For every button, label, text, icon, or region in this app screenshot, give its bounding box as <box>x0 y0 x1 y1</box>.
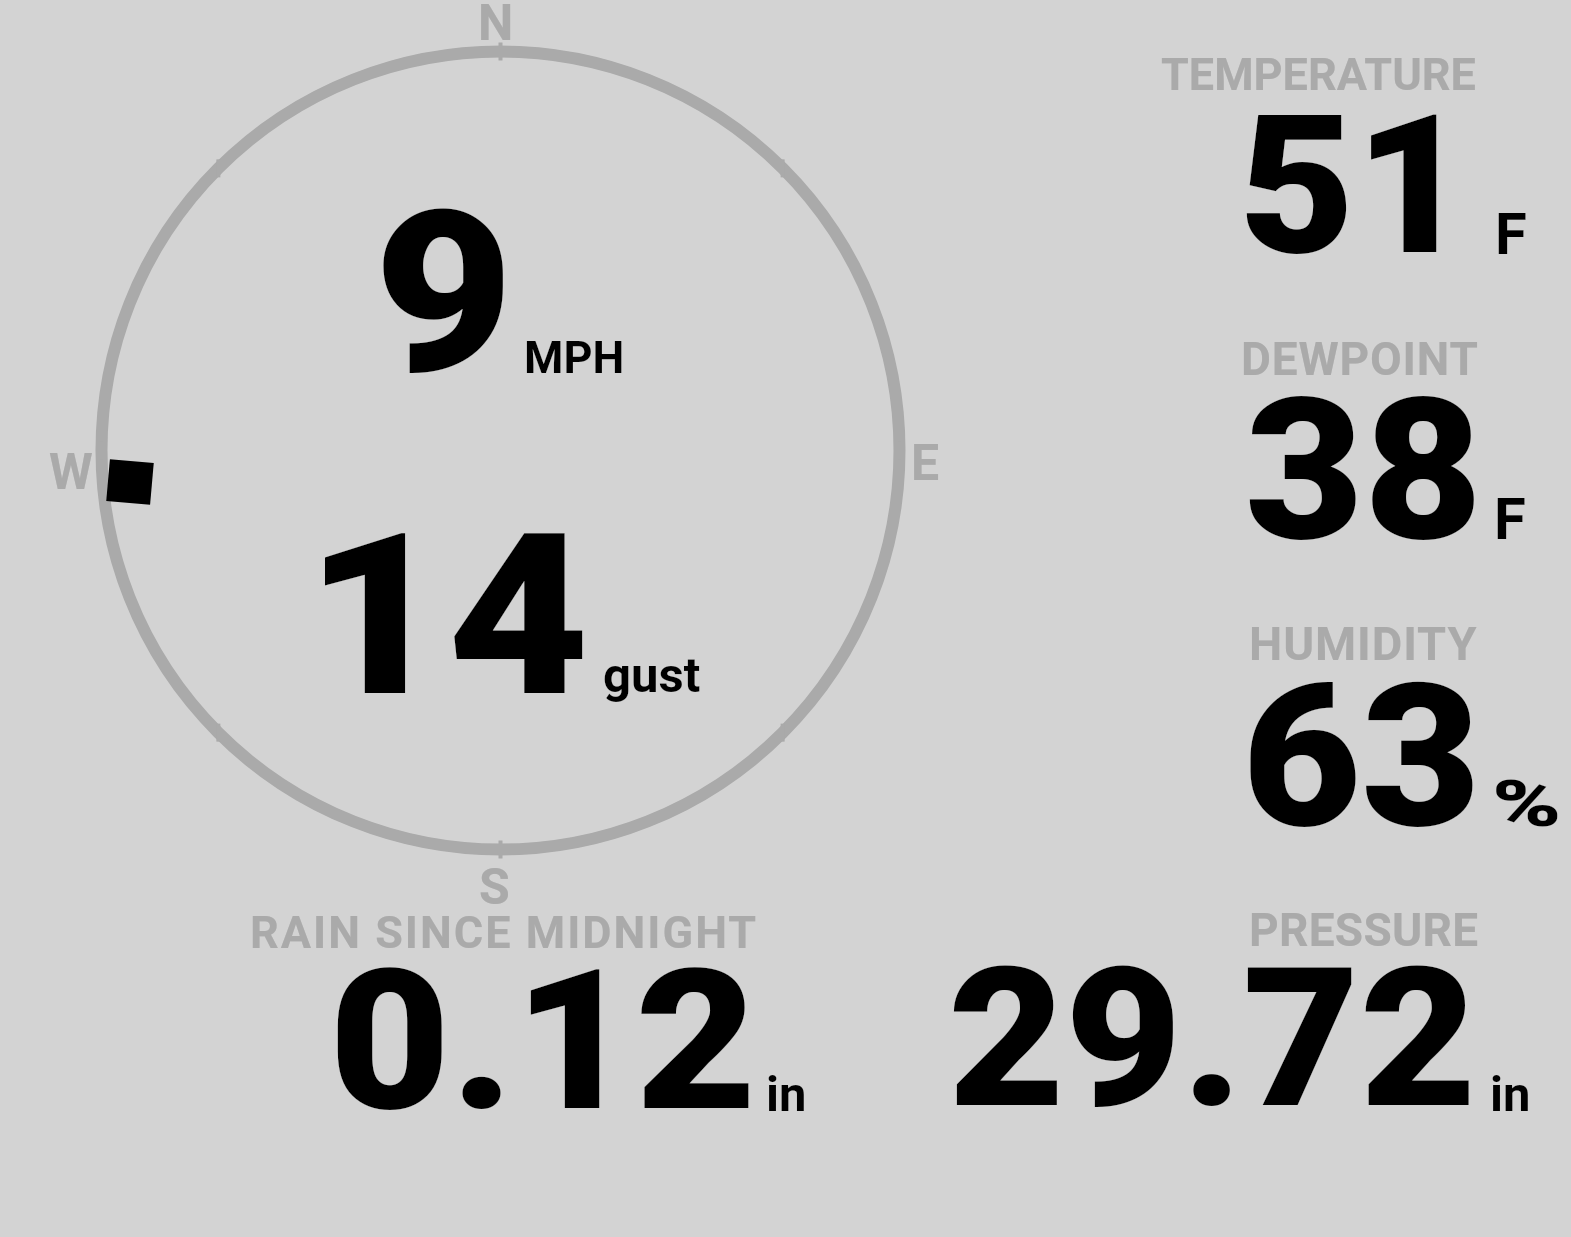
staticText: W <box>49 443 93 502</box>
staticText: E <box>911 434 940 493</box>
staticText: DEWPOINT <box>1241 332 1479 386</box>
staticText: RAIN SINCE MIDNIGHT <box>250 906 759 959</box>
button[interactable]: Rain since midnight 0.12 inches <box>230 900 830 1130</box>
staticText: 51 <box>1239 73 1471 299</box>
button[interactable]: Pressure 29.72 inches <box>920 895 1540 1130</box>
staticText: 38 <box>1245 356 1483 586</box>
button[interactable]: Wind direction and speed dial <box>96 46 906 856</box>
staticText: HUMIDITY <box>1249 616 1478 671</box>
button[interactable]: Dew point 38 degrees Fahrenheit <box>1120 325 1560 585</box>
staticText: 0.12 <box>329 928 758 1155</box>
staticText: F <box>1494 485 1526 553</box>
staticText: in <box>766 1066 807 1123</box>
button[interactable]: Humidity 63 percent <box>1120 610 1560 870</box>
staticText: PRESSURE <box>1249 903 1479 957</box>
staticText: 63 <box>1242 641 1481 873</box>
staticText: 29.72 <box>948 926 1477 1152</box>
staticText: MPH <box>524 331 625 384</box>
staticText: 9 <box>374 163 514 426</box>
button[interactable]: Temperature 51 degrees Fahrenheit <box>1120 40 1560 300</box>
staticText: TEMPERATURE <box>1161 48 1476 101</box>
staticText: % <box>1492 767 1562 842</box>
staticText: 14 <box>305 485 590 748</box>
staticText: N <box>478 0 514 53</box>
staticText: gust <box>603 647 701 704</box>
staticText: in <box>1490 1066 1531 1123</box>
staticText: F <box>1495 200 1527 268</box>
staticText: S <box>479 858 510 917</box>
